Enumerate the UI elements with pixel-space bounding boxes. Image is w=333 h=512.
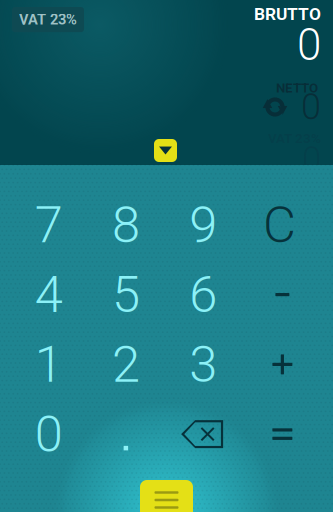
staticText: 1 [35, 335, 63, 394]
staticText: 8 [112, 195, 140, 255]
button[interactable]: Swap net and gross [262, 94, 288, 120]
button[interactable]: 9 [166, 190, 244, 260]
button[interactable]: Backspace [166, 399, 244, 469]
button[interactable]: Minus [244, 260, 321, 330]
button[interactable]: 6 [166, 260, 244, 330]
button[interactable]: 5 [89, 260, 166, 330]
staticText: 5 [112, 265, 140, 324]
staticText: 6 [189, 265, 217, 324]
staticText: 2 [112, 335, 140, 394]
button[interactable]: 4 [12, 260, 89, 330]
staticText: VAT 23% [19, 11, 77, 28]
staticText: 0 [35, 404, 63, 464]
staticText: 0 [297, 19, 321, 71]
button[interactable]: 7 [12, 190, 89, 260]
button[interactable]: 1 [12, 329, 89, 399]
button[interactable]: VAT 23% [12, 7, 84, 32]
button[interactable]: 8 [89, 190, 166, 260]
button[interactable]: Equals [244, 399, 321, 469]
staticText: 7 [35, 195, 63, 255]
staticText: C [263, 195, 296, 255]
button[interactable]: Menu [140, 480, 193, 512]
button[interactable]: Clear [244, 190, 321, 260]
button[interactable]: Plus [244, 329, 321, 399]
staticText: 3 [189, 335, 217, 394]
staticText: 0 [301, 86, 321, 128]
staticText: 0 [302, 139, 321, 180]
button[interactable]: 2 [89, 329, 166, 399]
staticText: 9 [189, 195, 217, 255]
button[interactable]: Show details [154, 139, 177, 162]
button[interactable]: Decimal point [89, 399, 166, 469]
staticText: BRUTTO [254, 4, 321, 24]
staticText: NETTO [276, 80, 318, 96]
button[interactable]: 0 [12, 399, 89, 469]
staticText: 4 [35, 265, 63, 324]
button[interactable]: 3 [166, 329, 244, 399]
